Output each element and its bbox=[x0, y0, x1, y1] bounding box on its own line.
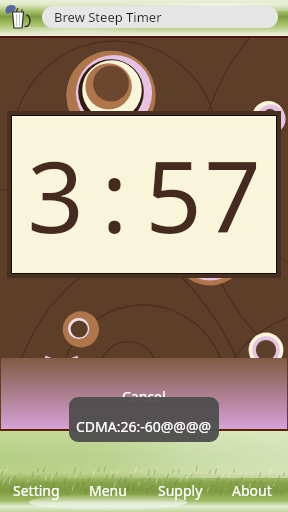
staticText: 5 bbox=[145, 127, 202, 262]
staticText: Cancel bbox=[122, 387, 166, 406]
button[interactable]: Setting bbox=[0, 431, 72, 512]
staticText: Brew Steep Timer bbox=[54, 8, 162, 26]
button[interactable]: Supply bbox=[144, 431, 216, 512]
other: Brew Steep Timer icon bbox=[3, 2, 36, 35]
staticText: 7 bbox=[204, 127, 261, 262]
staticText: Setting bbox=[13, 481, 60, 500]
staticText: Menu bbox=[89, 481, 127, 500]
staticText: CDMA:26:-60@@@@ bbox=[76, 417, 212, 436]
button[interactable]: Cancel bbox=[1, 358, 287, 429]
staticText: Supply bbox=[158, 481, 203, 500]
button[interactable]: About bbox=[216, 431, 288, 512]
button[interactable]: Brew Steep Timer bbox=[42, 6, 278, 28]
staticText: : bbox=[101, 127, 128, 262]
staticText: About bbox=[232, 481, 272, 500]
staticText: 3 bbox=[27, 127, 84, 262]
button[interactable]: Menu bbox=[72, 431, 144, 512]
